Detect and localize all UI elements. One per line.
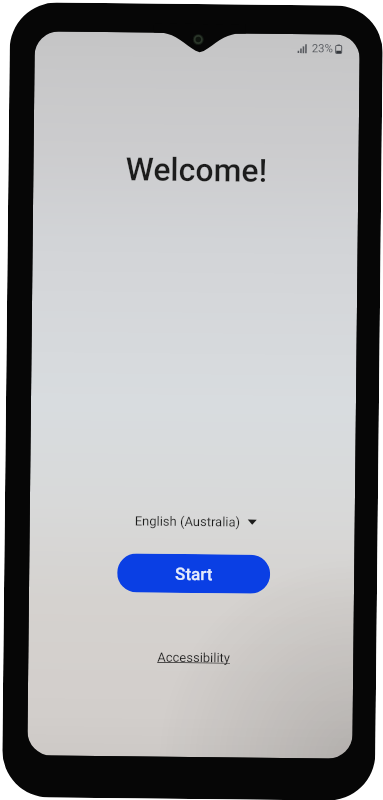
staticText: Accessibility — [157, 650, 230, 665]
staticText: Welcome! — [125, 150, 268, 190]
button[interactable]: Accessibility — [153, 648, 234, 667]
button[interactable]: Start — [117, 553, 270, 594]
button[interactable]: English (Australia) — [33, 506, 355, 536]
staticText: 23% — [312, 41, 334, 54]
staticText: English (Australia) — [135, 513, 241, 529]
staticText: Start — [175, 564, 213, 584]
other: Battery 23 percent — [336, 44, 342, 54]
other: Mobile signal — [298, 44, 308, 53]
